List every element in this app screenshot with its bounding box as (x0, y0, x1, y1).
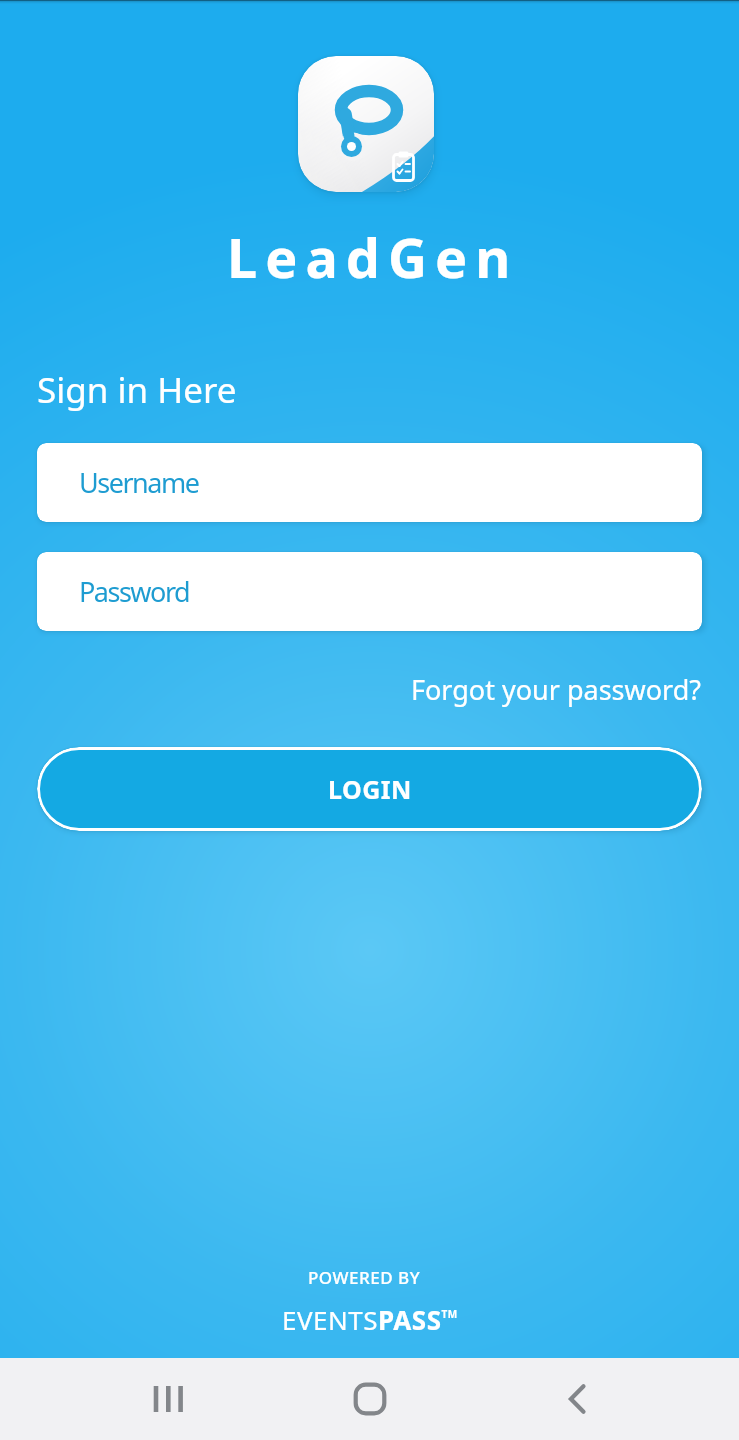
button[interactable]: Password (37, 552, 702, 631)
button[interactable] (338, 1368, 402, 1430)
staticText: LOGIN (328, 772, 412, 806)
button[interactable]: Username (37, 443, 702, 522)
button[interactable]: LOGIN (37, 747, 702, 831)
button[interactable]: Forgot your password? (411, 671, 702, 708)
button[interactable] (136, 1368, 200, 1430)
staticText: Password (79, 573, 190, 610)
staticText: EVENTSPASSTM (282, 1302, 458, 1337)
staticText: Sign in Here (37, 366, 237, 414)
staticText: LeadGen (227, 220, 519, 294)
button[interactable] (545, 1368, 609, 1430)
staticText: Username (79, 464, 199, 501)
staticText: POWERED BY (308, 1266, 421, 1289)
